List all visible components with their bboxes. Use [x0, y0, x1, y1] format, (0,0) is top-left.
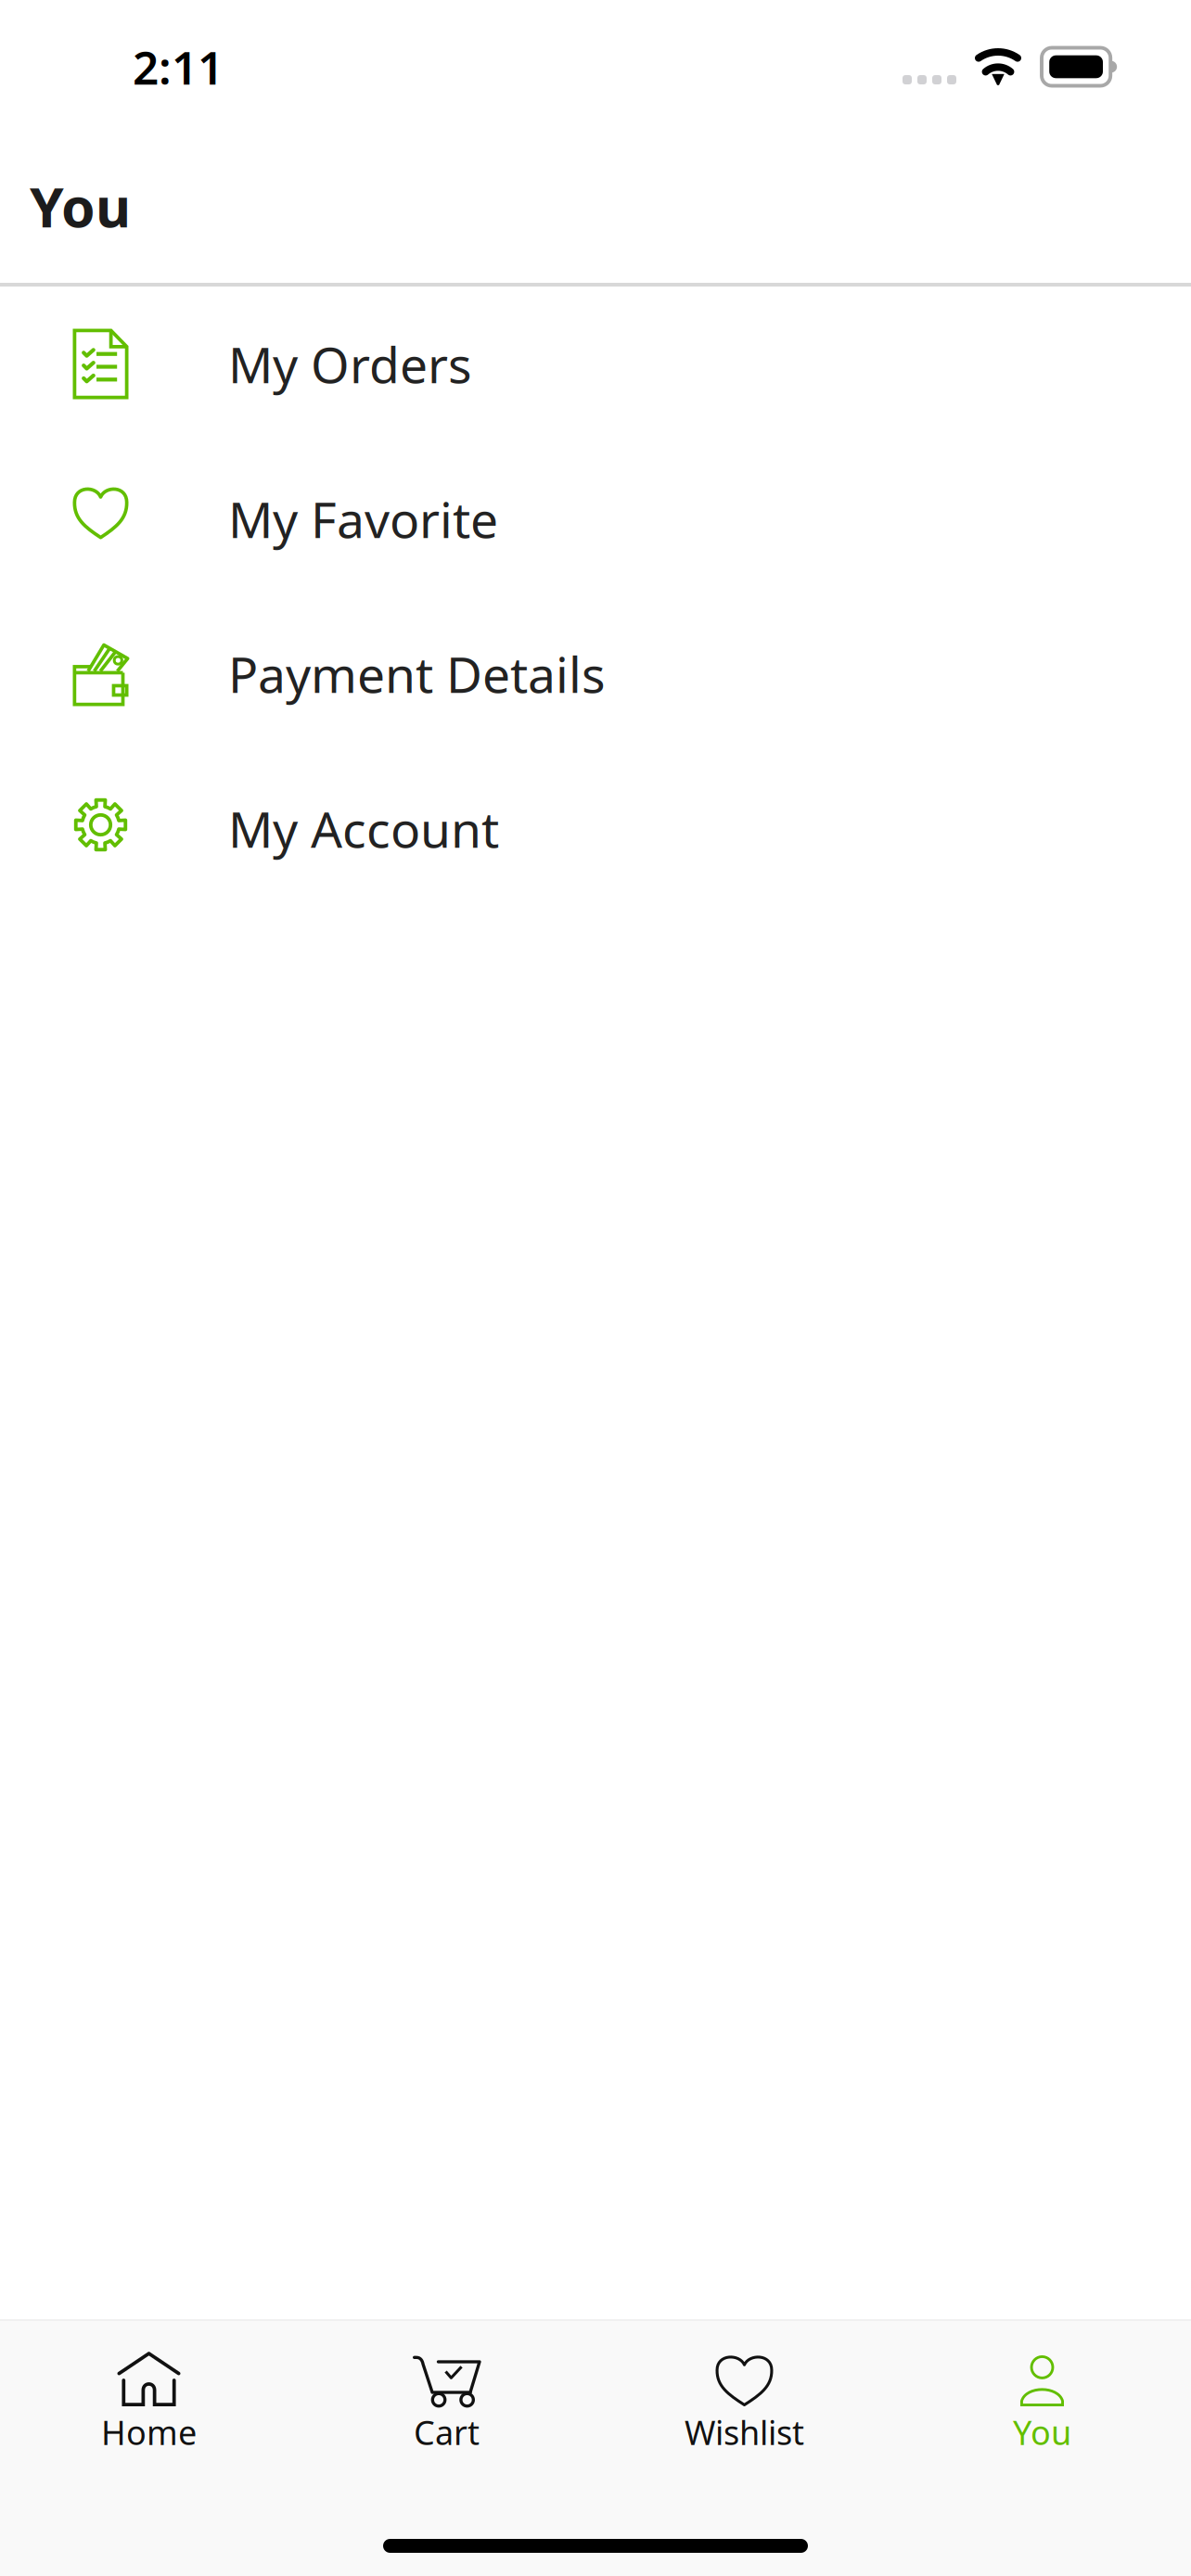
staticText: My Favorite — [228, 486, 498, 552]
button[interactable]: Payment Details — [0, 596, 1191, 751]
button[interactable]: My Orders — [0, 287, 1191, 441]
button[interactable]: My Favorite — [0, 441, 1191, 596]
button[interactable]: Wishlist — [595, 2321, 893, 2488]
button[interactable]: You — [893, 2321, 1191, 2488]
staticText: Cart — [414, 2410, 480, 2454]
staticText: 2:11 — [133, 36, 224, 97]
staticText: Home — [101, 2410, 197, 2454]
button[interactable]: Home — [0, 2321, 298, 2488]
staticText: My Orders — [228, 331, 472, 397]
staticText: You — [30, 170, 131, 242]
button[interactable]: Cart — [298, 2321, 595, 2488]
button[interactable]: My Account — [0, 751, 1191, 906]
staticText: Payment Details — [228, 641, 606, 706]
staticText: You — [1013, 2410, 1071, 2454]
staticText: My Account — [228, 796, 499, 861]
staticText: Wishlist — [685, 2410, 804, 2454]
